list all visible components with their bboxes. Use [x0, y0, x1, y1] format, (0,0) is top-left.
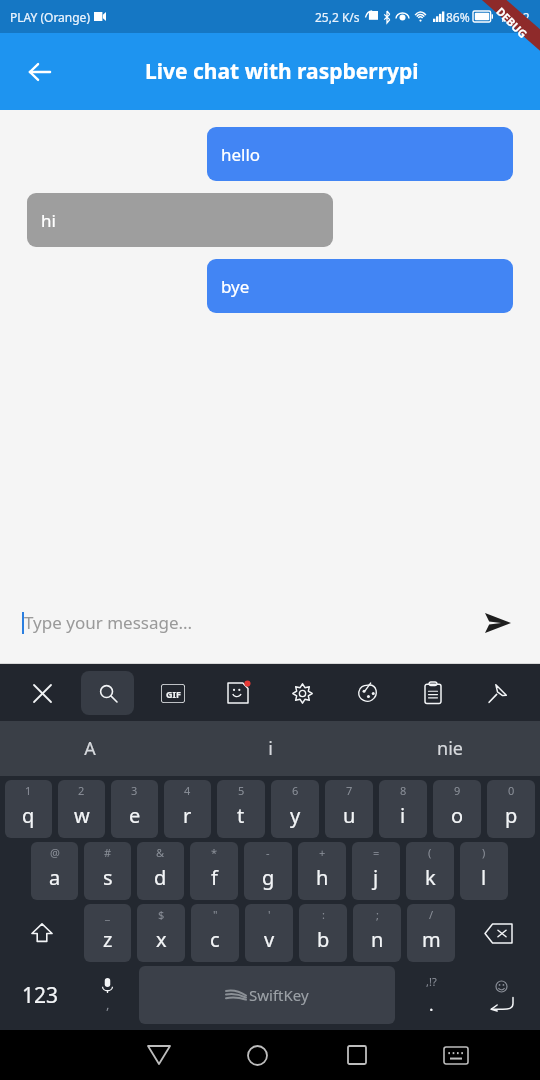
- staticText: p: [505, 802, 518, 829]
- staticText: /: [429, 907, 434, 922]
- staticText: 3: [131, 783, 138, 798]
- button[interactable]: Back: [12, 44, 68, 100]
- button[interactable]: /: [407, 904, 455, 962]
- button[interactable]: Shift: [2, 904, 81, 962]
- button[interactable]: 8: [379, 780, 427, 838]
- button[interactable]: 5: [217, 780, 265, 838]
- button[interactable]: Voice input: [79, 966, 136, 1024]
- button[interactable]: i: [180, 721, 360, 776]
- button[interactable]: 0: [487, 780, 535, 838]
- staticText: 6: [292, 783, 299, 798]
- button[interactable]: *: [190, 842, 238, 900]
- button[interactable]: Pin: [471, 671, 524, 715]
- staticText: Type your message...: [24, 611, 193, 634]
- staticText: GIF: [166, 688, 181, 700]
- staticText: 4: [184, 783, 191, 798]
- staticText: hello: [221, 143, 261, 166]
- staticText: _: [105, 907, 110, 922]
- staticText: s: [103, 864, 113, 891]
- staticText: +: [319, 845, 326, 860]
- staticText: o: [451, 802, 464, 829]
- button[interactable]: bye: [207, 259, 513, 313]
- button[interactable]: Search: [81, 671, 134, 715]
- button[interactable]: Themes: [341, 671, 394, 715]
- staticText: 123: [22, 981, 59, 1010]
- staticText: r: [183, 802, 192, 829]
- button[interactable]: =: [352, 842, 400, 900]
- button[interactable]: Back: [109, 1030, 208, 1080]
- button[interactable]: ;: [353, 904, 401, 962]
- staticText: d: [154, 864, 167, 891]
- staticText: ,: [106, 995, 110, 1013]
- button[interactable]: Recents: [307, 1030, 406, 1080]
- button[interactable]: &: [137, 842, 184, 900]
- staticText: f: [211, 864, 218, 891]
- staticText: 7: [346, 783, 353, 798]
- staticText: $: [158, 907, 165, 922]
- button[interactable]: Keyboard: [406, 1030, 505, 1080]
- button[interactable]: Settings: [276, 671, 329, 715]
- button[interactable]: 1: [5, 780, 52, 838]
- staticText: b: [317, 926, 330, 953]
- button[interactable]: ": [191, 904, 239, 962]
- staticText: .: [429, 993, 434, 1016]
- staticText: h: [316, 864, 329, 891]
- button[interactable]: Type your message...: [22, 611, 474, 634]
- button[interactable]: GIF: [146, 671, 199, 715]
- staticText: 1: [25, 783, 32, 798]
- button[interactable]: @: [31, 842, 78, 900]
- button[interactable]: Space: [139, 966, 395, 1024]
- button[interactable]: +: [298, 842, 346, 900]
- button[interactable]: 2: [58, 780, 105, 838]
- staticText: &: [156, 845, 165, 860]
- button[interactable]: :: [299, 904, 347, 962]
- button[interactable]: Send: [474, 599, 522, 647]
- button[interactable]: 123: [2, 966, 79, 1024]
- button[interactable]: 3: [111, 780, 158, 838]
- button[interactable]: 6: [271, 780, 319, 838]
- button[interactable]: Clipboard: [406, 671, 459, 715]
- button[interactable]: Stickers: [211, 671, 264, 715]
- button[interactable]: (: [406, 842, 454, 900]
- staticText: :: [322, 907, 325, 922]
- button[interactable]: Home: [208, 1030, 307, 1080]
- button[interactable]: ,!?: [398, 966, 464, 1024]
- button[interactable]: #: [84, 842, 131, 900]
- staticText: 9: [454, 783, 461, 798]
- staticText: a: [49, 864, 61, 891]
- staticText: y: [290, 802, 301, 829]
- staticText: w: [74, 802, 90, 829]
- staticText: DEBUG: [493, 4, 531, 41]
- button[interactable]: ): [460, 842, 508, 900]
- staticText: 25,2 K/s: [315, 9, 360, 25]
- button[interactable]: hello: [207, 127, 513, 181]
- staticText: (: [428, 845, 432, 860]
- staticText: PLAY (Orange): [10, 9, 90, 25]
- staticText: n: [371, 926, 384, 953]
- staticText: *: [211, 845, 218, 860]
- button[interactable]: Close: [16, 671, 69, 715]
- button[interactable]: 7: [325, 780, 373, 838]
- staticText: z: [103, 926, 113, 953]
- staticText: ,!?: [426, 974, 437, 989]
- button[interactable]: 4: [164, 780, 211, 838]
- staticText: #: [104, 845, 112, 860]
- staticText: g: [262, 864, 275, 891]
- staticText: i: [268, 736, 273, 761]
- staticText: bye: [221, 275, 250, 298]
- button[interactable]: $: [137, 904, 185, 962]
- button[interactable]: _: [84, 904, 131, 962]
- staticText: ": [213, 907, 218, 922]
- button[interactable]: Backspace: [458, 904, 538, 962]
- button[interactable]: 9: [433, 780, 481, 838]
- staticText: 12:42: [499, 9, 530, 25]
- staticText: ): [482, 845, 486, 860]
- button[interactable]: nie: [360, 721, 540, 776]
- button[interactable]: A: [0, 721, 180, 776]
- button[interactable]: hi: [27, 193, 333, 247]
- button[interactable]: -: [244, 842, 292, 900]
- staticText: l: [481, 864, 487, 891]
- button[interactable]: ': [245, 904, 293, 962]
- button[interactable]: Enter: [464, 966, 538, 1024]
- staticText: -: [266, 845, 270, 860]
